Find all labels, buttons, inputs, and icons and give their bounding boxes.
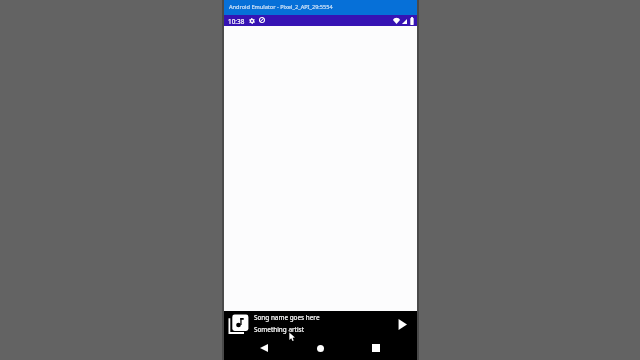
button[interactable]: Song name goes here [224, 311, 390, 336]
button[interactable]: Home [306, 336, 334, 360]
button[interactable]: Recent apps [362, 336, 390, 360]
staticText: Android Emulator - Pixel_2_API_29:5554 [229, 3, 333, 11]
staticText: Something artist [254, 325, 304, 334]
staticText: Song name goes here [254, 313, 320, 322]
staticText: 10:38 [228, 17, 245, 26]
button[interactable]: Back [250, 336, 278, 360]
button[interactable]: Play [394, 316, 410, 332]
